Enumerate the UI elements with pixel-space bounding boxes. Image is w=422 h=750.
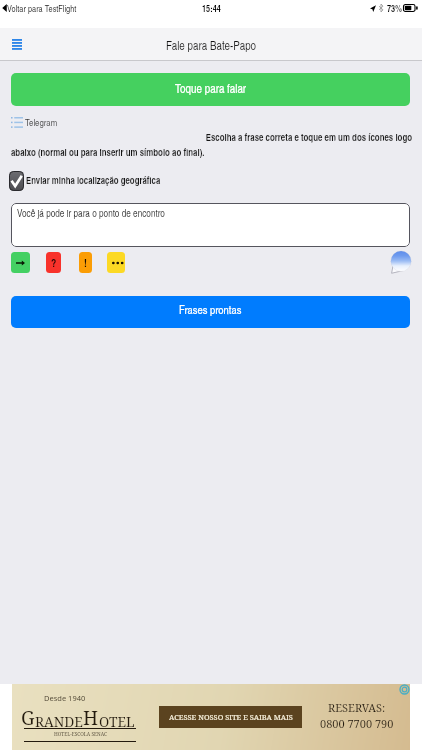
staticText: 15:44 [202,2,221,15]
button[interactable]: Enviar com exclamação [79,252,92,273]
button[interactable]: Menu [6,34,28,56]
staticText: RESERVAS: [328,700,386,715]
button[interactable]: Balão de conversa [389,249,413,273]
staticText: ? [51,255,57,270]
button[interactable]: Você já pode ir para o ponto de encontro [11,203,410,247]
staticText: Frases prontas [179,301,242,317]
staticText: abaixo (normal ou para inserir um símbol… [11,145,412,159]
button[interactable]: Informação do anúncio [400,685,409,694]
staticText: HOTEL-ESCOLA SENAC [54,731,107,738]
button[interactable]: Toque para falar [11,73,410,106]
button[interactable]: Enviar com reticências [107,252,125,273]
staticText: G [21,705,35,731]
staticText: Voltar para TestFlight [7,2,77,14]
staticText: ACESSE NOSSO SITE E SAIBA MAIS [169,712,293,722]
button[interactable]: Frases prontas [11,296,410,328]
staticText: Fale para Bate-Papo [166,37,257,53]
staticText: Telegram [25,116,58,129]
staticText: Você já pode ir para o ponto de encontro [17,206,165,220]
button[interactable]: Enviar [11,252,30,273]
button[interactable]: Enviar com interrogação [46,252,61,273]
button[interactable]: Telegram [11,116,58,129]
staticText: Escolha a frase correta e toque em um do… [11,130,412,144]
button[interactable]: Enviar minha localização geográfica [9,170,161,191]
button[interactable]: ACESSE NOSSO SITE E SAIBA MAIS [159,706,302,728]
staticText: 0800 7700 790 [320,716,394,731]
staticText: H [83,705,99,731]
button[interactable]: Desde 1940 [12,684,410,750]
staticText: Toque para falar [175,80,247,96]
staticText: 73% [387,2,402,15]
staticText: Desde 1940 [44,693,86,703]
staticText: ! [84,255,87,270]
staticText: RANDE [35,712,83,731]
staticText: Enviar minha localização geográfica [26,174,161,187]
staticText: OTEL [99,712,135,731]
